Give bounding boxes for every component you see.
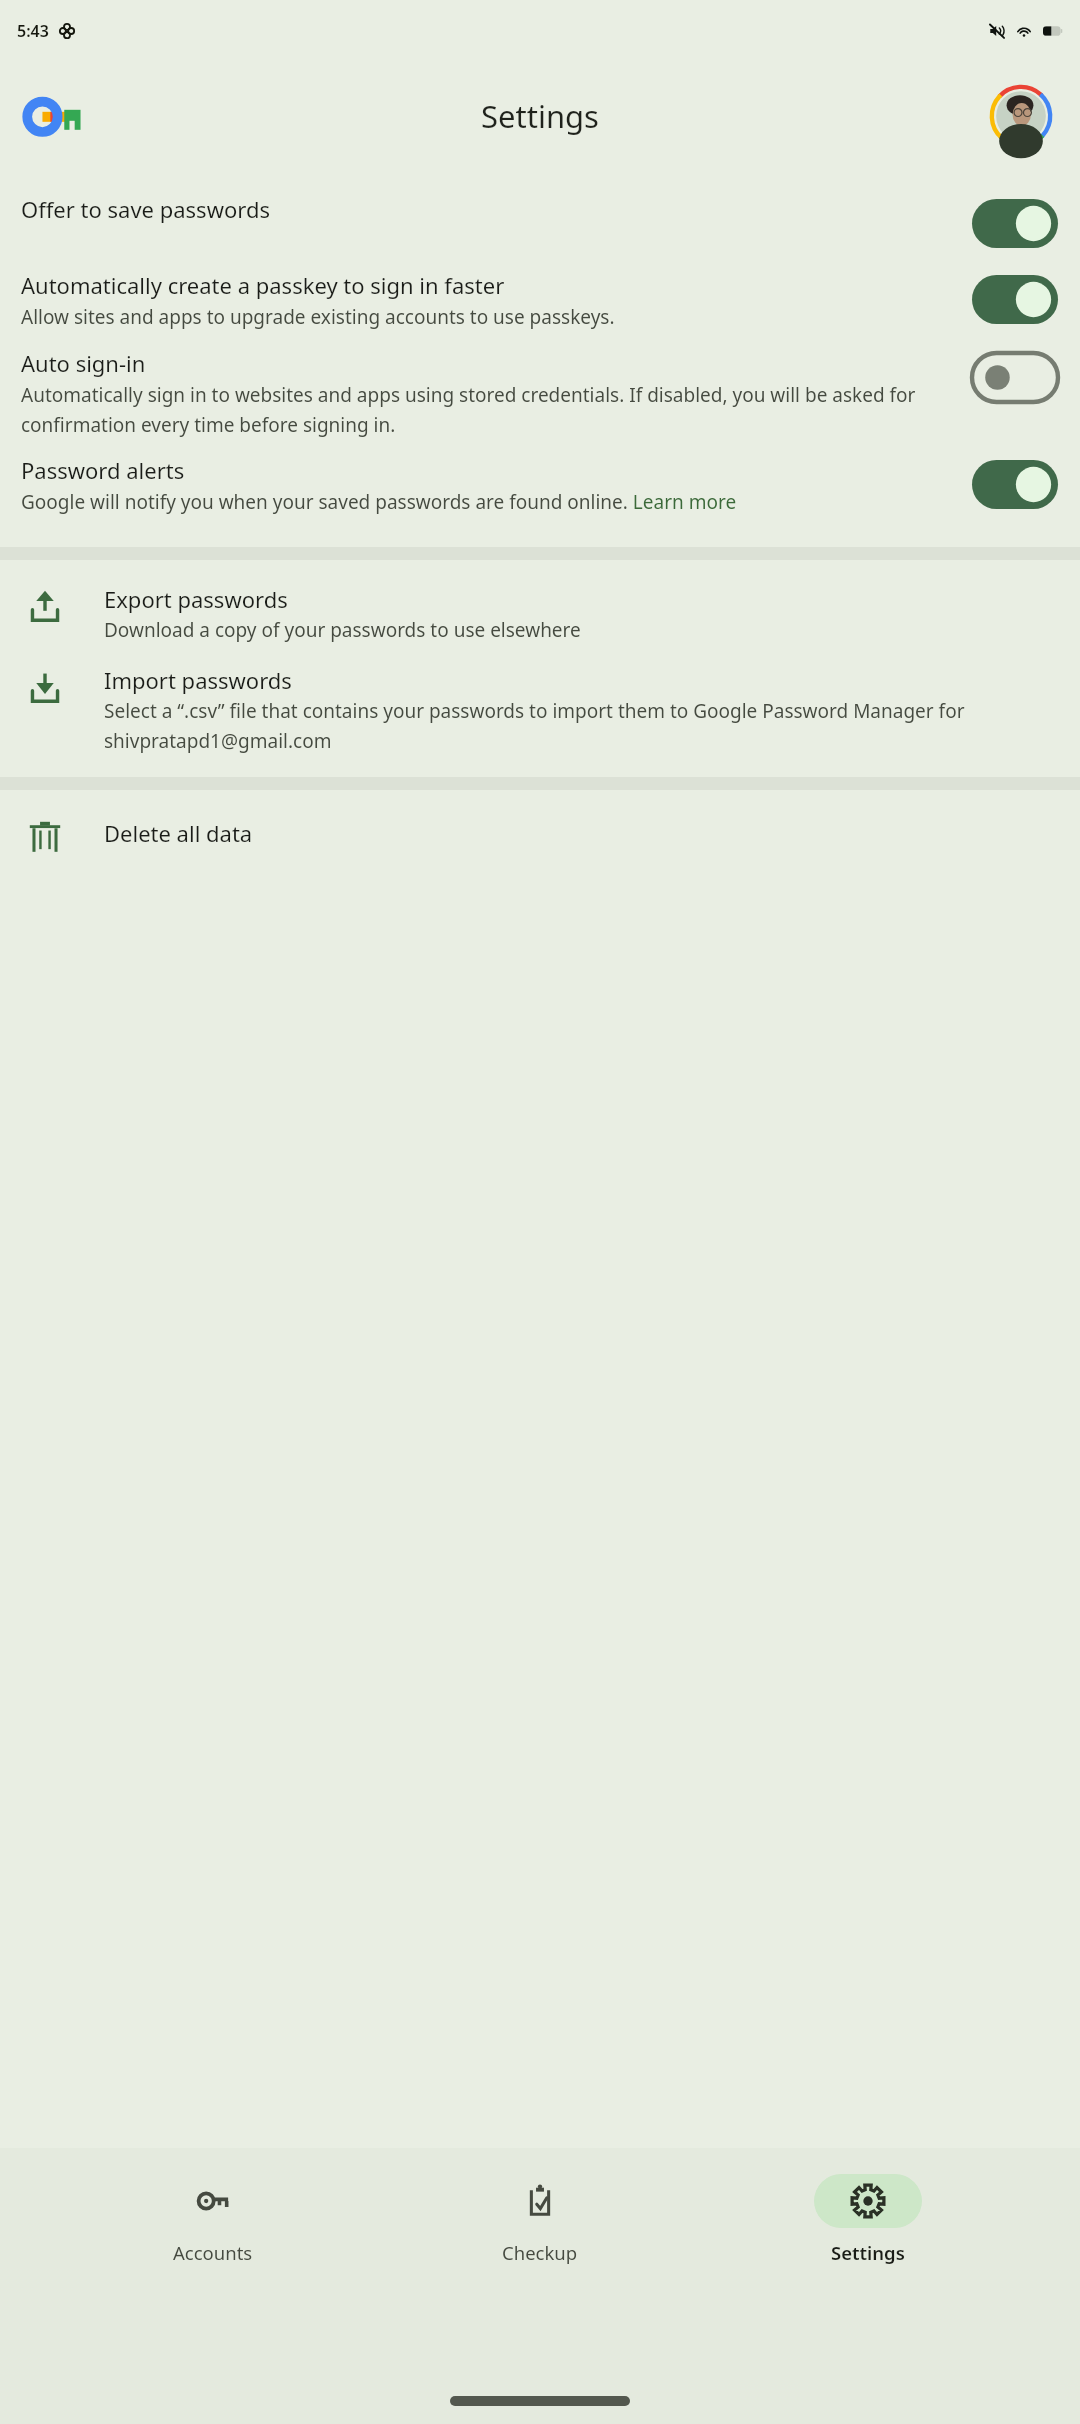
button[interactable]: Password alerts	[0, 453, 1080, 539]
staticText: Automatically create a passkey to sign i…	[21, 270, 505, 300]
button[interactable]: Enabled	[972, 199, 1058, 248]
button[interactable]: Auto sign-in	[0, 346, 1080, 453]
staticText: Select a “.csv” file that contains your …	[104, 698, 1036, 753]
button[interactable]: Import passwords	[0, 665, 1080, 753]
button[interactable]: Google Password Manager	[28, 94, 86, 138]
button[interactable]: Enabled	[972, 460, 1058, 509]
staticText: Import passwords	[104, 665, 292, 695]
button[interactable]: Delete all data	[0, 818, 1080, 856]
staticText: Offer to save passwords	[21, 194, 270, 224]
button[interactable]: Accounts	[98, 2174, 328, 2265]
staticText: Settings	[481, 95, 599, 137]
staticText: Allow sites and apps to upgrade existing…	[21, 304, 615, 330]
staticText: 5:43	[17, 20, 49, 42]
staticText: Google will notify you when your saved p…	[21, 489, 737, 515]
staticText: Export passwords	[104, 584, 288, 614]
staticText: Download a copy of your passwords to use…	[104, 617, 581, 643]
button[interactable]: Disabled	[972, 353, 1058, 402]
button[interactable]: Automatically create a passkey to sign i…	[0, 268, 1080, 346]
button[interactable]: Account profile	[989, 84, 1053, 148]
staticText: Accounts	[173, 2240, 253, 2265]
staticText: Delete all data	[104, 818, 253, 848]
staticText: Password alerts	[21, 455, 185, 485]
staticText: Checkup	[502, 2240, 578, 2265]
button[interactable]: Offer to save passwords	[0, 194, 1080, 268]
button[interactable]: Checkup	[425, 2174, 655, 2265]
button[interactable]: Export passwords	[0, 584, 1080, 643]
staticText: Auto sign-in	[21, 348, 146, 378]
button[interactable]: Settings	[753, 2174, 983, 2265]
staticText: Automatically sign in to websites and ap…	[21, 382, 956, 437]
button[interactable]: Enabled	[972, 275, 1058, 324]
staticText: Settings	[831, 2240, 905, 2265]
